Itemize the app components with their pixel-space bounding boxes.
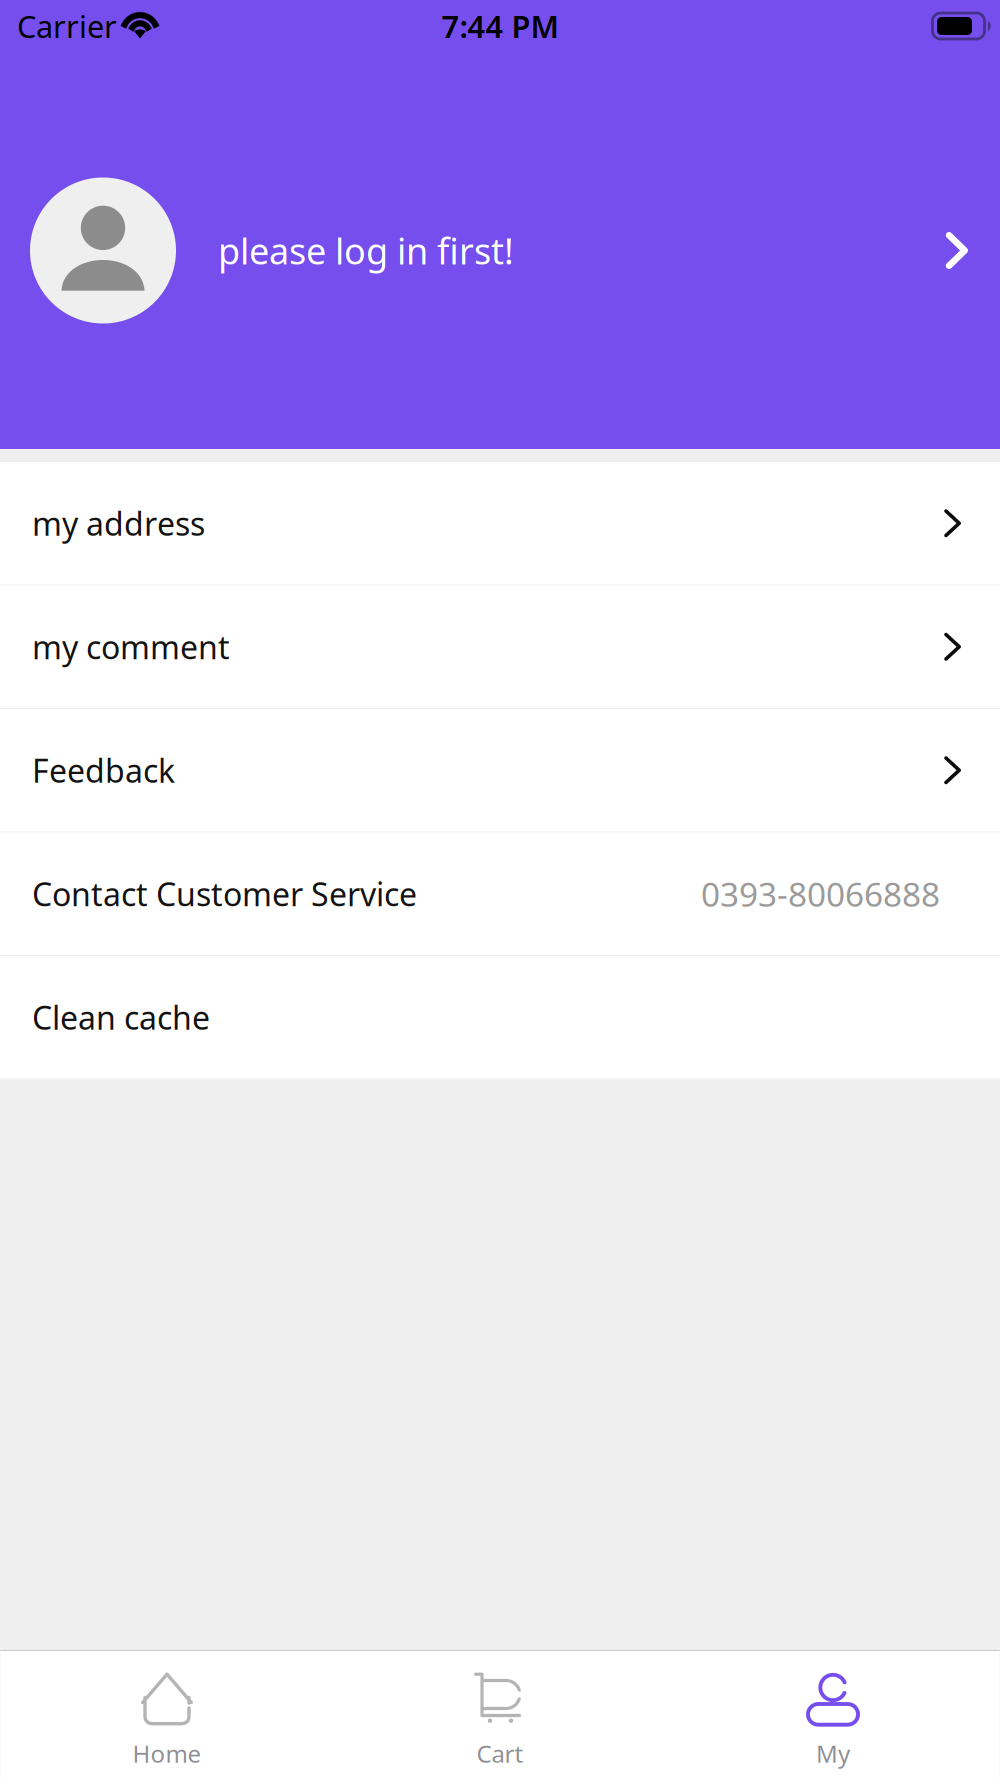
staticText: My (816, 1737, 850, 1769)
staticText: my comment (32, 625, 230, 668)
button[interactable]: Cart (333, 1650, 666, 1778)
button[interactable]: Contact Customer Service (0, 832, 1000, 956)
staticText: Contact Customer Service (32, 872, 417, 915)
staticText: Home (132, 1737, 201, 1769)
staticText: please log in first! (218, 227, 514, 274)
button[interactable]: Feedback (0, 709, 1000, 832)
staticText: 7:44 PM (441, 6, 558, 46)
staticText: my address (32, 502, 205, 544)
staticText: Carrier (17, 6, 117, 46)
button[interactable]: my address (0, 462, 1000, 585)
staticText: Cart (476, 1737, 523, 1769)
staticText: Clean cache (32, 996, 210, 1038)
staticText: Feedback (32, 749, 175, 791)
button[interactable]: Home (0, 1650, 333, 1778)
button[interactable]: please log in first! (0, 52, 1000, 449)
staticText: 0393-80066888 (701, 872, 940, 916)
button[interactable]: Clean cache (0, 956, 1000, 1079)
button[interactable]: My (666, 1650, 999, 1778)
button[interactable]: my comment (0, 585, 1000, 709)
